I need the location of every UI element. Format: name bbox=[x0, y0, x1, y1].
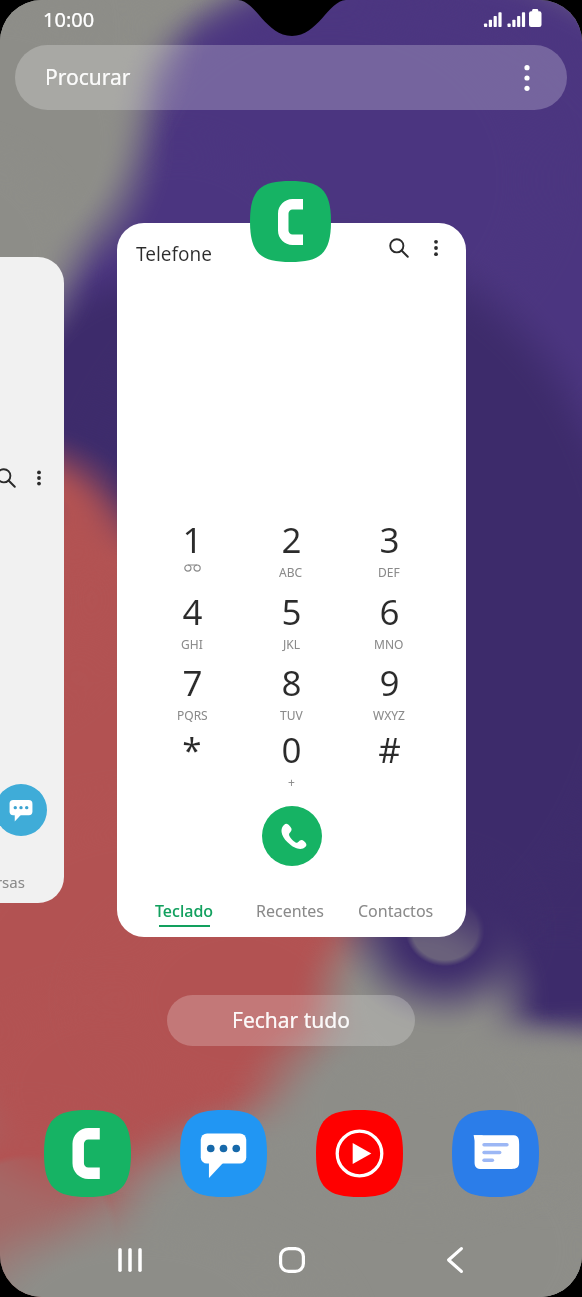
button[interactable]: Back bbox=[415, 1235, 495, 1285]
staticText: ABC bbox=[279, 564, 303, 580]
button[interactable]: 6 bbox=[344, 588, 434, 654]
staticText: TUV bbox=[280, 707, 303, 723]
staticText: MNO bbox=[374, 636, 404, 652]
staticText: 2 bbox=[281, 516, 302, 564]
button[interactable]: New conversation bbox=[0, 784, 47, 836]
staticText: GHI bbox=[181, 636, 203, 652]
button[interactable]: # bbox=[344, 726, 434, 792]
button[interactable]: Contactos bbox=[340, 900, 452, 937]
staticText: 10:00 bbox=[43, 6, 95, 33]
button[interactable]: YouTube Music bbox=[314, 1108, 405, 1199]
button[interactable]: Phone app bbox=[250, 181, 331, 262]
staticText: Teclado bbox=[155, 900, 214, 922]
staticText: 9 bbox=[379, 659, 400, 707]
staticText: Procurar bbox=[45, 63, 131, 92]
button[interactable]: Messages bbox=[178, 1108, 269, 1199]
button[interactable]: 9 bbox=[344, 659, 434, 725]
staticText: DEF bbox=[378, 564, 400, 580]
staticText: + bbox=[288, 774, 295, 790]
button[interactable]: Call bbox=[262, 806, 322, 866]
button[interactable]: More options bbox=[20, 459, 58, 497]
staticText: WXYZ bbox=[373, 707, 405, 723]
staticText: 1 bbox=[182, 516, 203, 564]
staticText: # bbox=[378, 726, 401, 774]
button[interactable]: 0 bbox=[246, 726, 336, 792]
button[interactable]: Procurar bbox=[15, 45, 567, 110]
button[interactable]: Recentes bbox=[234, 900, 346, 937]
staticText: 4 bbox=[182, 588, 203, 636]
button[interactable]: 7 bbox=[147, 659, 237, 725]
staticText: 7 bbox=[182, 659, 203, 707]
button[interactable]: 8 bbox=[246, 659, 336, 725]
button[interactable]: More options bbox=[417, 229, 455, 267]
staticText: 5 bbox=[281, 588, 302, 636]
staticText: Conversas bbox=[0, 872, 25, 892]
button[interactable]: 3 bbox=[344, 516, 434, 582]
button[interactable]: Search bbox=[379, 228, 419, 268]
button[interactable]: More options bbox=[510, 61, 544, 95]
staticText: Contactos bbox=[358, 900, 434, 922]
button[interactable]: Home bbox=[252, 1235, 332, 1285]
staticText: PQRS bbox=[177, 707, 208, 723]
button[interactable]: Search bbox=[0, 257, 64, 903]
button[interactable]: Recents bbox=[90, 1235, 170, 1285]
staticText: 0 bbox=[281, 726, 302, 774]
button[interactable]: Fechar tudo bbox=[167, 995, 415, 1046]
button[interactable]: 1 bbox=[147, 516, 237, 582]
staticText: Fechar tudo bbox=[232, 1006, 350, 1035]
button[interactable]: 2 bbox=[246, 516, 336, 582]
staticText: Recentes bbox=[256, 900, 325, 922]
staticText: Telefone bbox=[136, 241, 213, 267]
button[interactable]: 5 bbox=[246, 588, 336, 654]
button[interactable]: Telefone bbox=[117, 223, 466, 937]
button[interactable]: * bbox=[147, 726, 237, 792]
button[interactable]: Teclado bbox=[128, 900, 240, 937]
button[interactable]: Search bbox=[0, 458, 26, 498]
staticText: JKL bbox=[283, 636, 300, 652]
staticText: * bbox=[182, 726, 202, 774]
button[interactable]: Phone bbox=[42, 1108, 133, 1199]
button[interactable]: Google Messages bbox=[450, 1108, 541, 1199]
staticText: 3 bbox=[379, 516, 400, 564]
staticText: 6 bbox=[379, 588, 400, 636]
button[interactable]: 4 bbox=[147, 588, 237, 654]
staticText: 8 bbox=[281, 659, 302, 707]
